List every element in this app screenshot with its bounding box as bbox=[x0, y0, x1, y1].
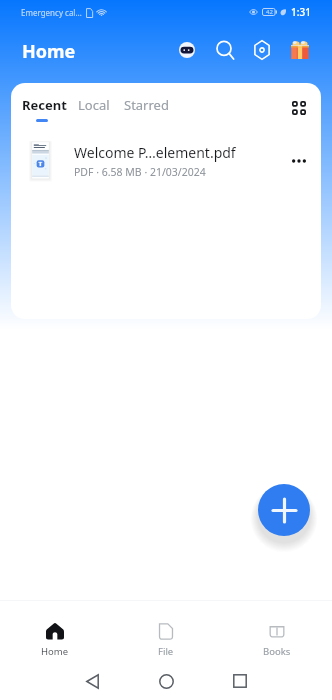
button[interactable]: Books bbox=[221, 600, 332, 658]
button[interactable]: Local bbox=[72, 86, 116, 132]
staticText: Local bbox=[78, 96, 110, 114]
button[interactable]: Add bbox=[258, 484, 310, 536]
staticText: Recent bbox=[22, 96, 67, 114]
staticText: Starred bbox=[124, 96, 169, 114]
button[interactable]: Welcome P…element.pdf bbox=[11, 135, 321, 187]
button[interactable]: Home bbox=[0, 600, 110, 658]
button[interactable]: Settings bbox=[244, 32, 280, 68]
button[interactable]: Starred bbox=[118, 86, 175, 132]
staticText: Emergency cal… bbox=[21, 7, 82, 18]
staticText: Home bbox=[41, 645, 69, 658]
button[interactable]: Gifts bbox=[282, 32, 318, 68]
button[interactable]: File bbox=[110, 600, 221, 658]
staticText: File bbox=[158, 645, 174, 658]
staticText: Books bbox=[263, 645, 291, 658]
button[interactable]: Account bbox=[169, 32, 205, 68]
staticText: Home bbox=[22, 39, 76, 64]
button[interactable]: More options bbox=[284, 146, 314, 176]
button[interactable]: Recent bbox=[16, 86, 73, 132]
staticText: 1:31 bbox=[291, 5, 311, 19]
button[interactable]: Home bbox=[146, 661, 186, 700]
button[interactable]: Grid view bbox=[285, 94, 313, 122]
button[interactable]: Search bbox=[207, 32, 243, 68]
staticText: Welcome P…element.pdf bbox=[74, 143, 236, 162]
button[interactable]: Back bbox=[72, 661, 112, 700]
staticText: PDF · 6.58 MB · 21/03/2024 bbox=[74, 165, 206, 179]
button[interactable]: Recents bbox=[220, 661, 260, 700]
staticText: 42 bbox=[266, 8, 273, 16]
